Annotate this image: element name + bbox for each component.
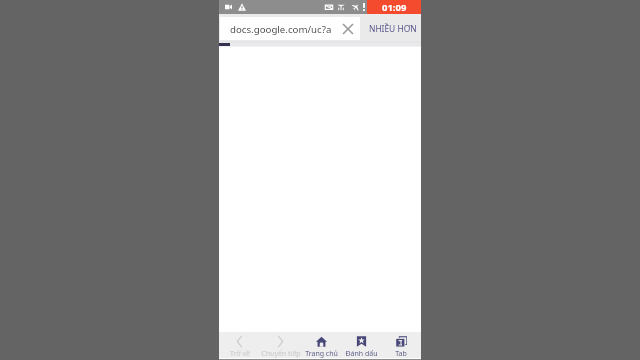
button[interactable]: NHIỀU HƠN xyxy=(364,14,421,41)
staticText: NHIỀU HƠN xyxy=(369,23,417,34)
button[interactable]: Tab xyxy=(381,332,421,358)
staticText: Đánh dấu xyxy=(345,349,378,358)
button[interactable]: Chuyển tiếp xyxy=(260,332,301,358)
button[interactable]: docs.google.com/uc?a xyxy=(220,17,360,40)
staticText: Chuyển tiếp xyxy=(261,349,301,358)
button[interactable]: Trở về xyxy=(219,332,260,358)
staticText: Trang chủ xyxy=(305,349,338,358)
button[interactable]: Đánh dấu xyxy=(341,332,381,358)
staticText: docs.google.com/uc?a xyxy=(230,23,332,36)
staticText: Tab xyxy=(395,349,407,358)
staticText: Trở về xyxy=(230,349,250,358)
button[interactable]: Clear xyxy=(337,17,359,40)
button[interactable]: Trang chủ xyxy=(301,332,341,358)
staticText: 01:09 xyxy=(382,1,407,14)
